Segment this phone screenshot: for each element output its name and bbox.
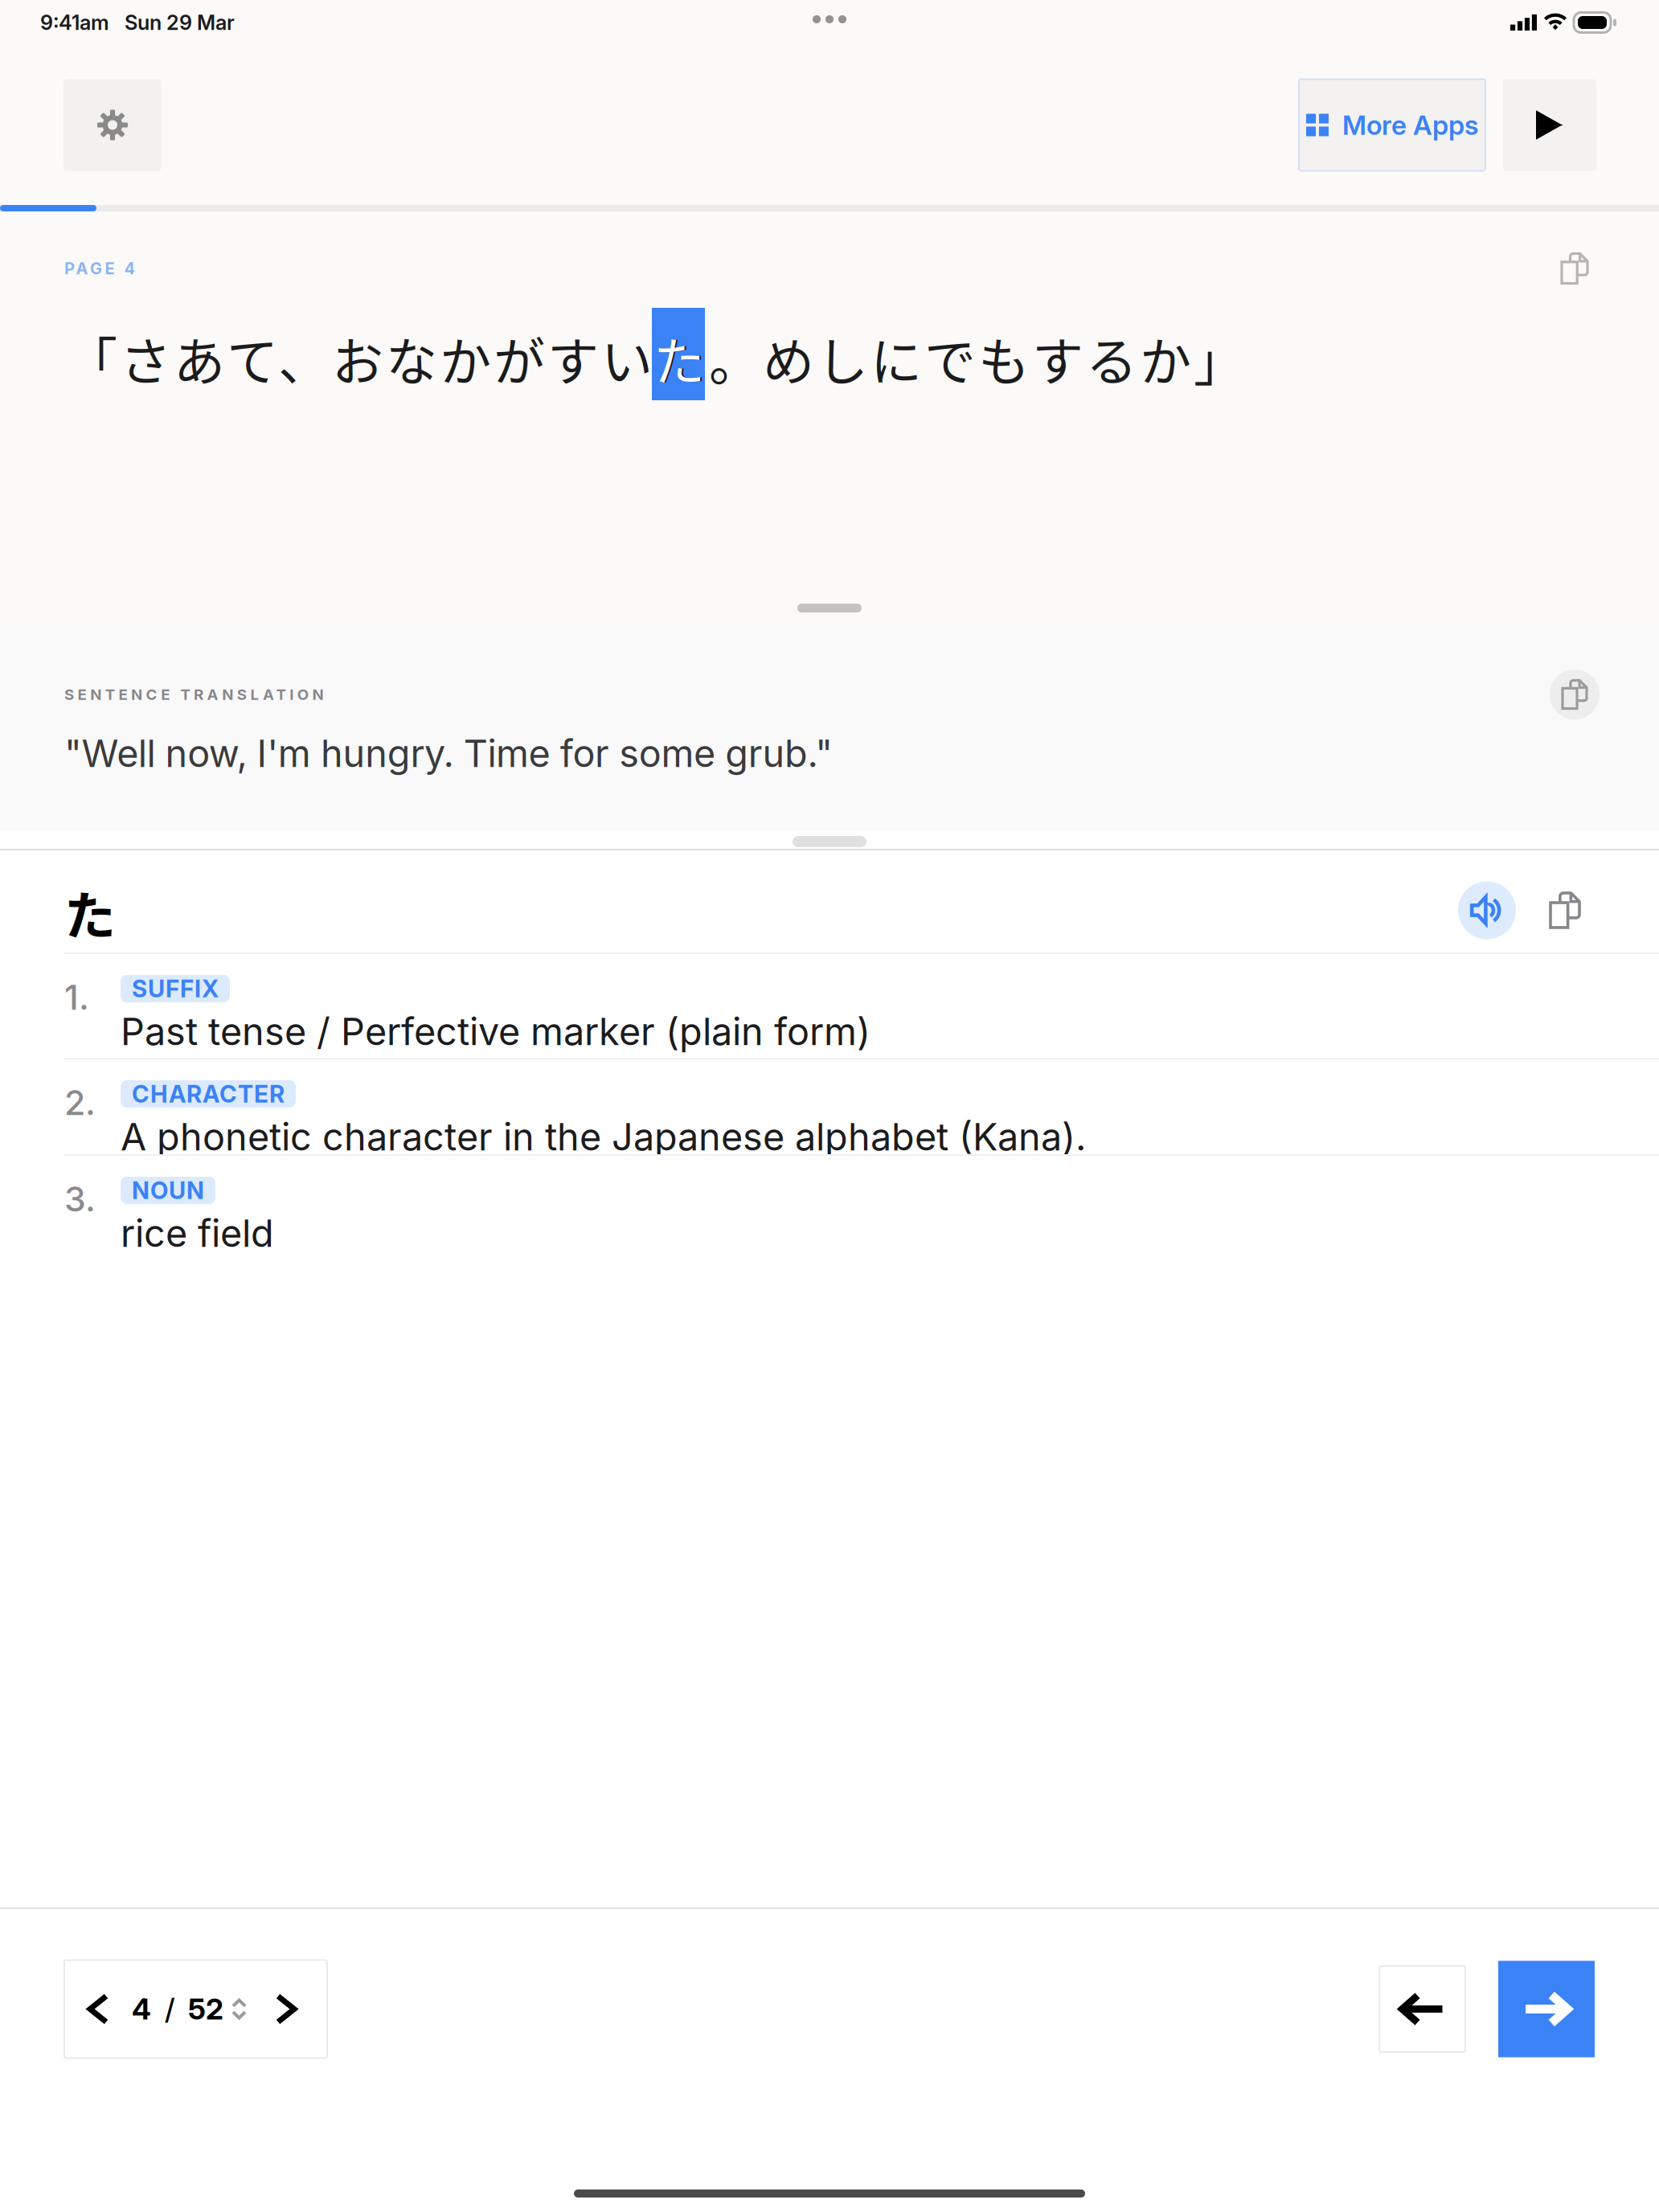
staticText: 4 bbox=[132, 1992, 151, 2027]
button[interactable]: More Apps bbox=[1299, 79, 1485, 171]
button[interactable]: Copy word bbox=[1540, 885, 1590, 935]
staticText: た bbox=[64, 875, 116, 949]
button[interactable]: Back bbox=[1379, 1966, 1465, 2052]
staticText: 3. bbox=[64, 1178, 96, 1220]
button[interactable]: Previous page bbox=[64, 1960, 132, 2058]
staticText: 9:41am bbox=[40, 10, 109, 35]
staticText: 2. bbox=[64, 1082, 96, 1123]
staticText: Past tense / Perfective marker (plain fo… bbox=[121, 1009, 870, 1054]
button[interactable]: Continue bbox=[1498, 1961, 1595, 2057]
button[interactable]: Next page bbox=[245, 1960, 327, 2058]
button[interactable]: Play bbox=[1503, 79, 1596, 171]
staticText: 52 bbox=[188, 1992, 223, 2027]
button[interactable]: Settings bbox=[63, 79, 162, 171]
button[interactable]: 4 bbox=[132, 1960, 245, 2058]
button[interactable]: Play pronunciation bbox=[1458, 881, 1516, 939]
button[interactable]: Copy translation bbox=[1550, 670, 1600, 719]
button[interactable]: Copy sentence bbox=[1550, 244, 1600, 293]
staticText: 「さあて、おなかがすいた。めしにでもするか」 bbox=[66, 321, 1245, 395]
staticText: rice field bbox=[121, 1210, 274, 1256]
staticText: た bbox=[653, 321, 705, 395]
staticText: SENTENCE TRANSLATION bbox=[64, 685, 323, 704]
staticText: More Apps bbox=[1342, 109, 1478, 141]
staticText: PAGE 4 bbox=[64, 259, 135, 278]
staticText: A phonetic character in the Japanese alp… bbox=[121, 1114, 1086, 1159]
staticText: Sun 29 Mar bbox=[125, 10, 235, 35]
staticText: CHARACTER bbox=[132, 1080, 285, 1108]
staticText: SUFFIX bbox=[132, 974, 219, 1003]
staticText: NOUN bbox=[132, 1176, 204, 1205]
staticText: "Well now, I'm hungry. Time for some gru… bbox=[64, 731, 833, 776]
staticText: / bbox=[165, 1992, 174, 2027]
staticText: 1. bbox=[64, 977, 89, 1018]
